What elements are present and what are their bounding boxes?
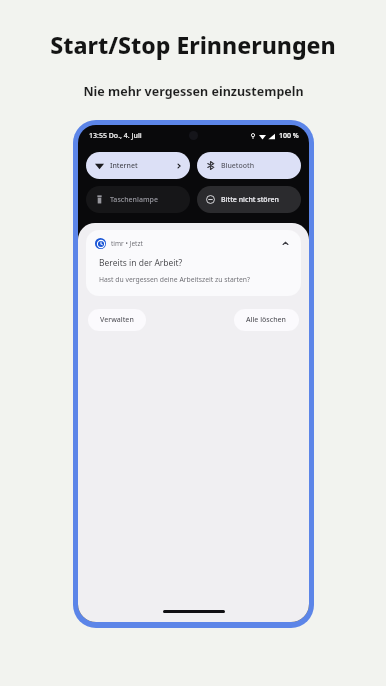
button[interactable]: Bitte nicht stören bbox=[197, 186, 301, 213]
staticText: Nie mehr vergessen einzustempeln bbox=[83, 83, 304, 100]
staticText: Taschenlampe bbox=[110, 195, 158, 205]
button[interactable]: Taschenlampe bbox=[86, 186, 190, 213]
button[interactable]: Alle löschen bbox=[234, 309, 299, 331]
staticText: 100 % bbox=[279, 131, 299, 141]
staticText: timr • Jetzt bbox=[111, 239, 143, 248]
staticText: Start/Stop Erinnerungen bbox=[50, 29, 336, 60]
staticText: Internet bbox=[110, 161, 138, 171]
staticText: Verwalten bbox=[100, 315, 134, 325]
staticText: 13:55 Do., 4. Juli bbox=[89, 131, 142, 141]
staticText: Bitte nicht stören bbox=[221, 195, 279, 205]
button[interactable]: timr • Jetzt bbox=[86, 230, 301, 296]
button[interactable]: Internet bbox=[86, 152, 190, 179]
staticText: Alle löschen bbox=[246, 315, 287, 325]
staticText: Bluetooth bbox=[221, 161, 255, 171]
button[interactable]: Bluetooth bbox=[197, 152, 301, 179]
button[interactable]: Benachrichtigung einklappen bbox=[279, 237, 292, 250]
staticText: Hast du vergessen deine Arbeitszeit zu s… bbox=[99, 275, 250, 284]
staticText: Bereits in der Arbeit? bbox=[99, 257, 183, 269]
button[interactable]: Verwalten bbox=[88, 309, 146, 331]
